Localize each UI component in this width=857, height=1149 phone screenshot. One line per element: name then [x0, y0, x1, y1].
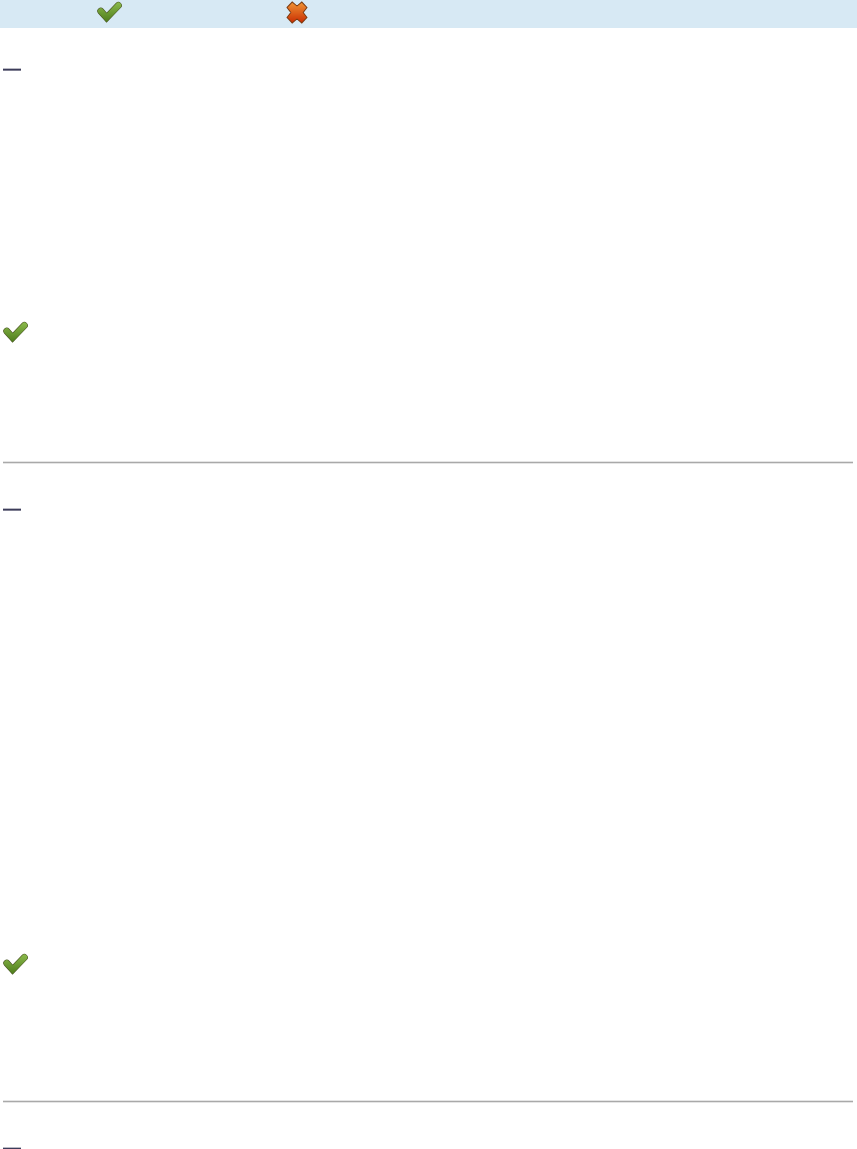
- button[interactable]: Supported: [97, 1, 122, 22]
- button[interactable]: Section one heading: [3, 69, 21, 73]
- button[interactable]: Supported: [3, 321, 28, 342]
- button[interactable]: Not supported: [287, 2, 307, 23]
- button[interactable]: Supported: [3, 953, 28, 974]
- button[interactable]: Section two heading: [3, 509, 21, 513]
